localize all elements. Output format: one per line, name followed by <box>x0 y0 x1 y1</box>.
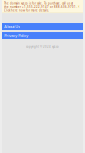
staticText: Privacy Policy <box>4 33 28 38</box>
staticText: copyright © 2024 xyz.co <box>26 45 59 48</box>
button[interactable]: Privacy Policy <box>2 32 83 39</box>
button[interactable]: Close <box>76 4 81 9</box>
staticText: The domain xyz.co is for sale. To purcha… <box>4 2 77 12</box>
staticText: About Us <box>4 24 20 29</box>
button[interactable]: About Us <box>2 23 83 30</box>
staticText: x <box>78 5 79 8</box>
